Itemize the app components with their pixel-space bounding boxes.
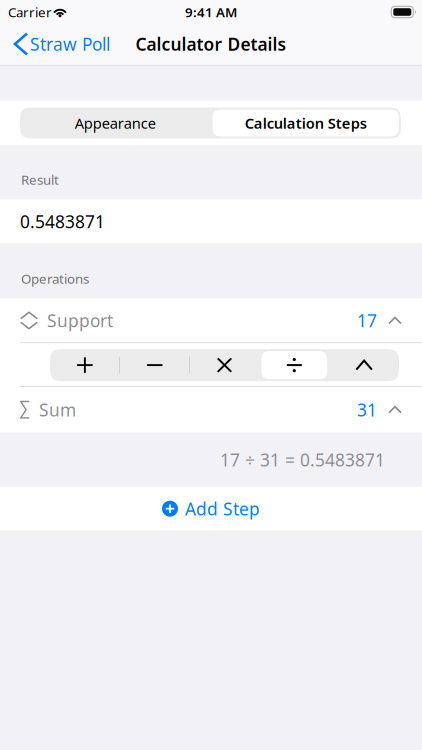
button[interactable]: Subtract (120, 349, 190, 381)
staticText: 0.5483871 (20, 210, 105, 233)
staticText: Calculation Steps (245, 113, 367, 133)
staticText: 9:41 AM (185, 3, 237, 21)
button[interactable]: Divide (259, 349, 329, 381)
staticText: 31 (357, 398, 377, 421)
button[interactable]: Support (0, 298, 422, 342)
button[interactable]: Straw Poll (0, 24, 120, 64)
staticText: 17 ÷ 31 = 0.5483871 (220, 448, 385, 471)
button[interactable]: Calculation Steps (210, 107, 401, 138)
staticText: Appearance (75, 113, 156, 133)
staticText: Add Step (185, 497, 260, 520)
button[interactable]: Power (329, 349, 399, 381)
button[interactable]: Sum (0, 387, 422, 433)
staticText: Result (21, 171, 59, 188)
staticText: Straw Poll (30, 32, 110, 55)
button[interactable]: Appearance (20, 107, 210, 138)
button[interactable]: Add (50, 349, 120, 381)
staticText: 17 (357, 309, 377, 332)
staticText: Calculator Details (135, 32, 286, 55)
staticText: Carrier (8, 3, 52, 21)
staticText: Sum (39, 398, 76, 421)
button[interactable]: Multiply (190, 349, 259, 381)
staticText: Operations (21, 270, 89, 287)
button[interactable]: Add Step (0, 487, 422, 531)
staticText: Support (47, 309, 113, 332)
